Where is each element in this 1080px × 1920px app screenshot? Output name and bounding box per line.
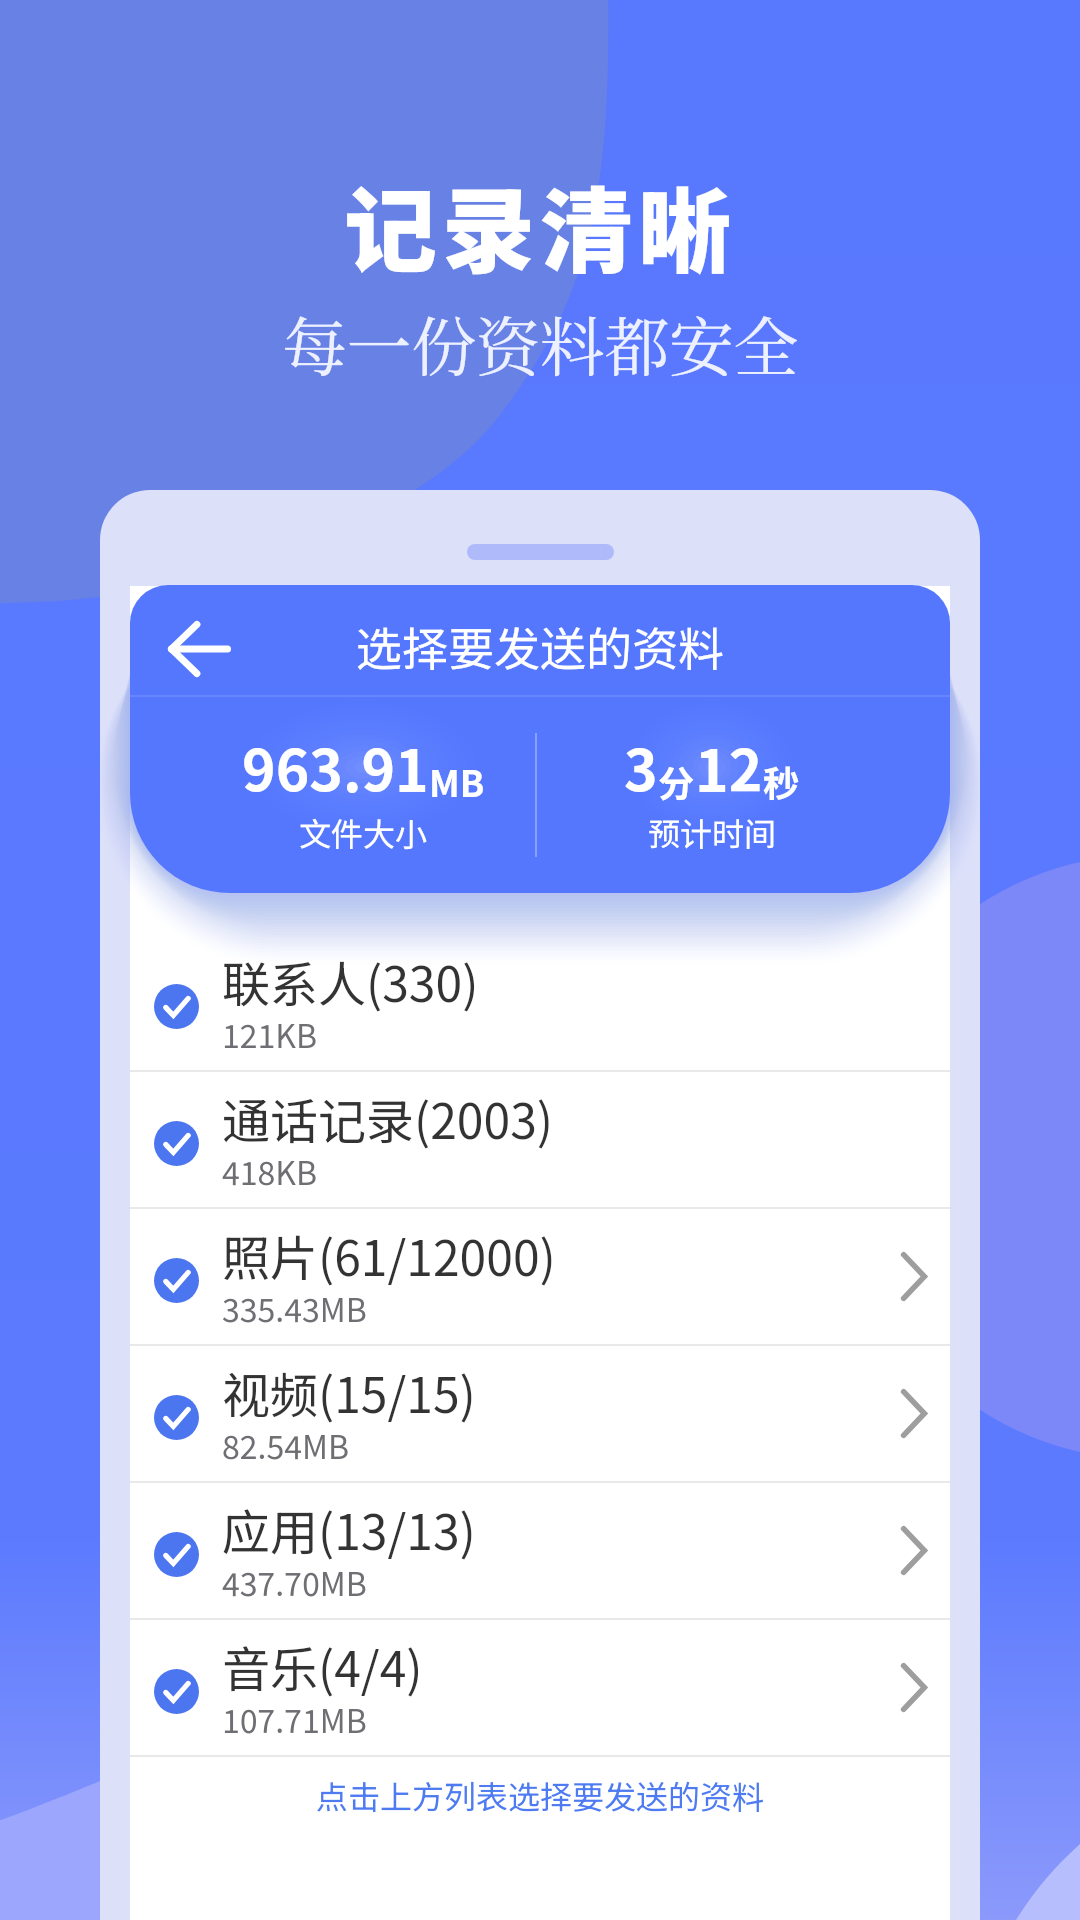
staticText: 预计时间	[648, 809, 777, 855]
staticText: 分	[658, 755, 695, 807]
staticText: 12	[695, 726, 763, 809]
staticText: 视频(15/15)	[222, 1357, 476, 1427]
button[interactable]: 点击上方列表选择要发送的资料	[130, 1757, 950, 1833]
staticText: 每一份资料都安全	[282, 296, 799, 389]
staticText: 应用(13/13)	[222, 1494, 476, 1564]
staticText: 文件大小	[299, 809, 428, 855]
staticText: 437.70MB	[222, 1559, 367, 1605]
staticText: 记录清晰	[344, 157, 736, 292]
staticText: 121KB	[222, 1011, 317, 1057]
button[interactable]: 通话记录(2003)	[130, 1072, 950, 1207]
staticText: 选择要发送的资料	[356, 613, 724, 680]
staticText: 335.43MB	[222, 1285, 367, 1331]
staticText: 联系人(330)	[222, 946, 479, 1016]
button[interactable]: 联系人(330)	[130, 935, 950, 1070]
button[interactable]: 视频(15/15)	[130, 1346, 950, 1481]
staticText: 963.91	[242, 726, 429, 809]
staticText: 通话记录(2003)	[222, 1083, 554, 1153]
button[interactable]: Back	[159, 609, 239, 689]
staticText: 音乐(4/4)	[222, 1631, 423, 1701]
staticText: 点击上方列表选择要发送的资料	[316, 1772, 765, 1818]
button[interactable]: 音乐(4/4)	[130, 1620, 950, 1755]
staticText: MB	[429, 755, 485, 807]
button[interactable]: 照片(61/12000)	[130, 1209, 950, 1344]
staticText: 107.71MB	[222, 1696, 367, 1742]
staticText: 秒	[763, 755, 800, 807]
staticText: 3	[624, 726, 658, 809]
staticText: 照片(61/12000)	[222, 1220, 556, 1290]
button[interactable]: 应用(13/13)	[130, 1483, 950, 1618]
staticText: 418KB	[222, 1148, 317, 1194]
staticText: 82.54MB	[222, 1422, 349, 1468]
